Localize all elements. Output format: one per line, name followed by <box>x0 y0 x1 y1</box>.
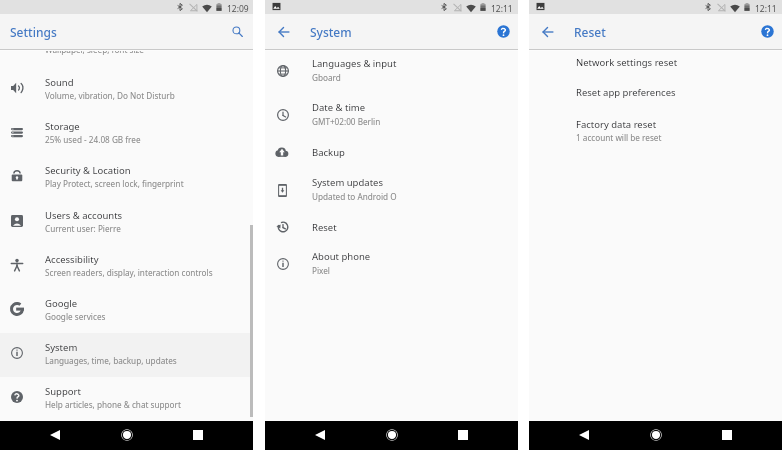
button[interactable]: Home <box>379 422 405 448</box>
staticText: Reset <box>574 24 606 40</box>
button[interactable]: About phone <box>265 243 518 280</box>
button[interactable]: Recent apps <box>714 422 740 448</box>
button[interactable]: Reset <box>265 214 518 244</box>
staticText: Backup <box>312 146 345 159</box>
staticText: Wallpaper, sleep, font size <box>45 44 144 55</box>
staticText: Help articles, phone & chat support <box>45 399 181 410</box>
button[interactable]: Factory data reset <box>529 111 782 148</box>
button[interactable]: Storage <box>0 112 253 156</box>
button[interactable]: Navigate up <box>535 19 561 45</box>
staticText: System <box>310 24 352 40</box>
button[interactable]: Date & time <box>265 94 518 131</box>
button[interactable]: Home <box>114 422 140 448</box>
staticText: 12:11 <box>755 3 777 15</box>
staticText: Languages, time, backup, updates <box>45 355 177 366</box>
button[interactable]: Help <box>754 18 780 44</box>
button[interactable]: Recent apps <box>185 422 211 448</box>
button[interactable]: Security & Location <box>0 156 253 200</box>
staticText: Settings <box>10 24 57 40</box>
button[interactable]: System <box>0 333 253 377</box>
staticText: Factory data reset <box>576 118 657 131</box>
staticText: Security & Location <box>45 164 131 177</box>
staticText: Reset <box>312 221 337 234</box>
button[interactable]: Google <box>0 289 253 333</box>
staticText: Support <box>45 385 81 398</box>
button[interactable]: Users & accounts <box>0 201 253 245</box>
staticText: 1 account will be reset <box>576 132 662 143</box>
staticText: Network settings reset <box>576 56 678 69</box>
staticText: Gboard <box>312 72 341 83</box>
button[interactable]: Recent apps <box>450 422 476 448</box>
staticText: System <box>45 341 78 354</box>
staticText: About phone <box>312 250 371 263</box>
button[interactable]: Help <box>490 18 516 44</box>
button[interactable]: Languages & input <box>265 50 518 87</box>
button[interactable]: Navigate up <box>271 19 297 45</box>
staticText: Accessibility <box>45 253 99 266</box>
staticText: Current user: Pierre <box>45 223 121 234</box>
button[interactable]: Accessibility <box>0 245 253 289</box>
staticText: Pixel <box>312 265 330 276</box>
staticText: Reset app preferences <box>576 86 676 99</box>
staticText: Sound <box>45 76 74 89</box>
staticText: 12:11 <box>491 3 513 15</box>
staticText: Users & accounts <box>45 209 123 222</box>
button[interactable]: Backup <box>265 139 518 169</box>
staticText: Display <box>45 30 78 43</box>
staticText: Screen readers, display, interaction con… <box>45 267 213 278</box>
staticText: System updates <box>312 176 383 189</box>
button[interactable]: Home <box>643 422 669 448</box>
staticText: Google <box>45 297 78 310</box>
staticText: 25% used - 24.08 GB free <box>45 134 141 145</box>
button[interactable]: Display <box>0 22 253 66</box>
staticText: 12:09 <box>227 3 249 15</box>
staticText: Play Protect, screen lock, fingerprint <box>45 178 184 189</box>
staticText: Updated to Android O <box>312 191 397 202</box>
button[interactable]: Search <box>224 18 250 44</box>
staticText: Volume, vibration, Do Not Disturb <box>45 90 175 101</box>
button[interactable]: Support <box>0 377 253 421</box>
button[interactable]: Reset app preferences <box>529 79 782 109</box>
button[interactable]: Sound <box>0 68 253 112</box>
button[interactable]: Back <box>42 422 68 448</box>
staticText: Languages & input <box>312 57 397 70</box>
button[interactable]: Network settings reset <box>529 49 782 79</box>
staticText: GMT+02:00 Berlin <box>312 116 381 127</box>
staticText: Google services <box>45 311 106 322</box>
staticText: Storage <box>45 120 80 133</box>
button[interactable]: System updates <box>265 169 518 206</box>
button[interactable]: Back <box>307 422 333 448</box>
button[interactable]: Back <box>571 422 597 448</box>
staticText: Date & time <box>312 101 366 114</box>
